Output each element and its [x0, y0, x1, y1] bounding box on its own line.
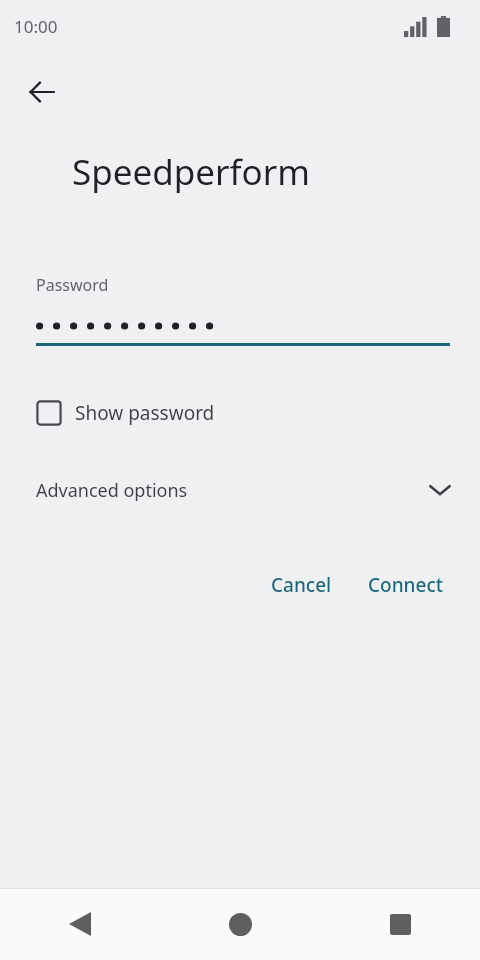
- staticText: Connect: [368, 572, 444, 598]
- button[interactable]: Advanced options: [0, 468, 480, 512]
- button[interactable]: Home: [160, 888, 320, 960]
- button[interactable]: Show password: [36, 400, 215, 426]
- staticText: Password: [36, 274, 109, 296]
- staticText: Cancel: [271, 572, 332, 598]
- button[interactable]: Connect: [356, 564, 456, 606]
- button[interactable]: Recent apps: [320, 888, 480, 960]
- staticText: Speedperform: [72, 148, 310, 196]
- staticText: Advanced options: [36, 478, 188, 503]
- button[interactable]: Cancel: [259, 564, 344, 606]
- button[interactable]: Password: [36, 274, 450, 346]
- staticText: Show password: [75, 400, 215, 426]
- staticText: 10:00: [14, 15, 58, 38]
- button[interactable]: Back: [14, 64, 70, 120]
- button[interactable]: Back: [0, 888, 160, 960]
